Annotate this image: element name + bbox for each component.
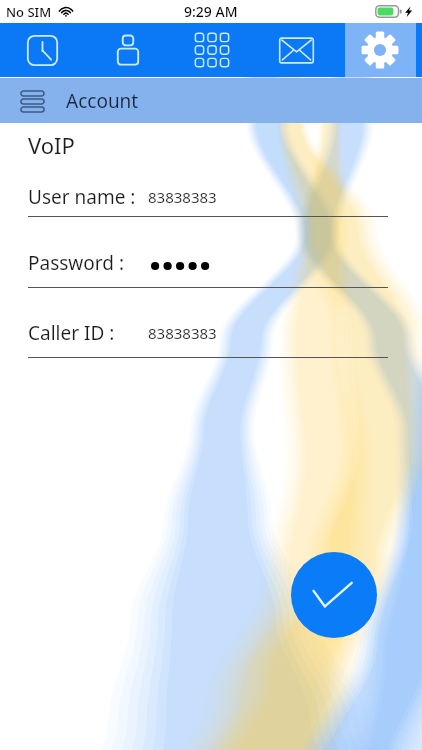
staticText: 83838383 <box>148 323 217 343</box>
button[interactable]: Keypad <box>170 23 254 77</box>
staticText: Caller ID : <box>28 320 115 346</box>
staticText: 9:29 AM <box>184 2 238 21</box>
staticText: Account <box>66 88 139 114</box>
staticText: 83838383 <box>148 187 217 207</box>
button[interactable]: Contacts <box>85 23 170 77</box>
button[interactable]: Messages <box>254 23 338 77</box>
staticText: No SIM <box>6 3 52 21</box>
staticText: VoIP <box>28 130 75 160</box>
staticText: User name : <box>28 184 136 210</box>
button[interactable]: Recents <box>0 23 85 77</box>
staticText: Password : <box>28 250 124 276</box>
button[interactable]: Menu <box>19 88 45 114</box>
button[interactable]: Settings <box>338 23 422 77</box>
button[interactable]: Confirm <box>291 552 377 638</box>
